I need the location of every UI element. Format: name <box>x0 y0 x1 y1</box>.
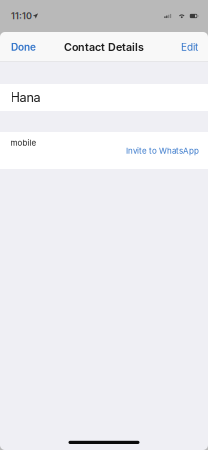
staticText: Hana <box>10 90 40 105</box>
staticText: 11:10 <box>11 10 32 21</box>
staticText: Edit <box>181 41 198 53</box>
button[interactable]: Edit <box>173 33 208 61</box>
button[interactable]: Invite to WhatsApp <box>118 146 208 156</box>
staticText: mobile <box>10 138 36 148</box>
button[interactable]: Hana <box>0 84 208 111</box>
button[interactable]: Done <box>0 33 44 61</box>
staticText: Invite to WhatsApp <box>126 146 199 156</box>
staticText: Contact Details <box>64 40 144 53</box>
staticText: Done <box>11 41 36 53</box>
